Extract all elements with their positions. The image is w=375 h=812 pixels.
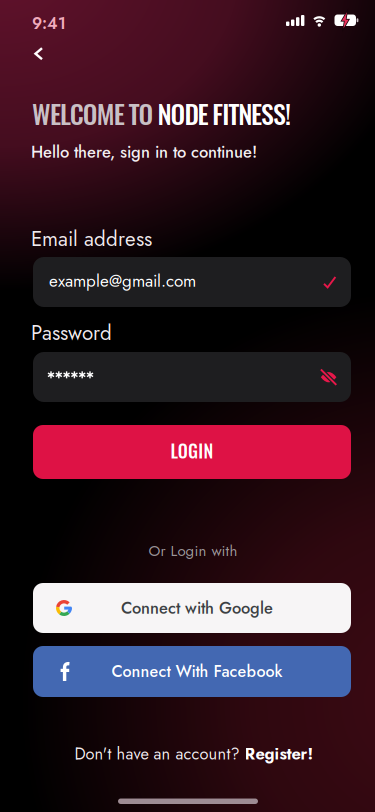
staticText: example@gmail.com <box>49 268 196 293</box>
staticText: Register! <box>244 742 313 766</box>
staticText: Or Login with <box>148 540 237 562</box>
staticText: Email address <box>31 224 152 254</box>
staticText: NODE FITNESS! <box>158 94 291 132</box>
staticText: Hello there, sign in to continue! <box>31 140 257 164</box>
staticText: 9:41 <box>32 12 66 35</box>
staticText: LOGIN <box>171 437 213 464</box>
staticText: WELCOME TO <box>32 94 154 132</box>
staticText: Password <box>31 318 112 348</box>
button[interactable]: LOGIN <box>33 425 351 479</box>
staticText: Connect With Facebook <box>111 660 282 683</box>
button[interactable]: Connect With Facebook <box>33 646 351 697</box>
staticText: Connect with Google <box>121 596 273 620</box>
staticText: Don't have an account? <box>74 742 244 766</box>
button[interactable]: Show password <box>320 369 337 385</box>
button[interactable]: Register! <box>244 742 313 766</box>
button[interactable]: Connect with Google <box>33 583 351 633</box>
button[interactable]: Back <box>24 41 54 67</box>
